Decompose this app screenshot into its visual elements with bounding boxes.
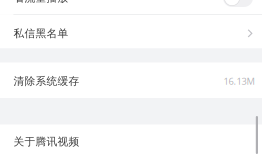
button[interactable]: 关于腾讯视频: [0, 124, 262, 154]
staticText: 私信黑名单: [13, 27, 68, 40]
staticText: 关于腾讯视频: [13, 135, 79, 148]
button[interactable]: 省流量播放: [0, 0, 262, 14]
button[interactable]: 清除系统缓存: [0, 62, 262, 98]
staticText: 16.13M: [223, 75, 254, 87]
button[interactable]: 私信黑名单: [0, 15, 262, 48]
staticText: 清除系统缓存: [13, 75, 79, 88]
staticText: 省流量播放: [13, 0, 68, 4]
